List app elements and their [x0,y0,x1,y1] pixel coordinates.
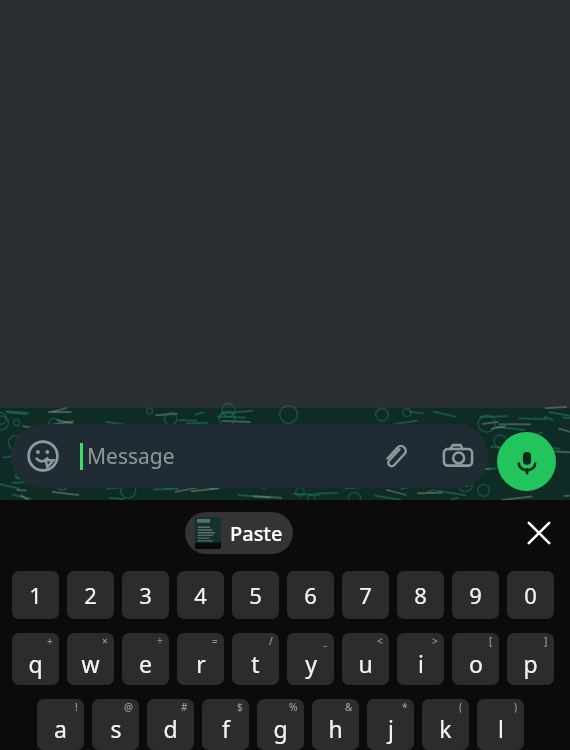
staticText: u [358,648,373,679]
staticText: ] [544,634,548,648]
button[interactable]: Camera [442,440,474,472]
staticText: < [377,634,383,648]
button[interactable]: $ [202,699,249,750]
staticText: _ [323,634,328,648]
staticText: Message [87,442,175,471]
button[interactable]: 1 [12,571,59,619]
staticText: o [469,648,483,679]
staticText: h [328,713,343,744]
button[interactable]: Stickers [25,438,61,474]
staticText: 7 [359,580,372,610]
button[interactable]: 2 [67,571,114,619]
staticText: t [251,648,260,679]
staticText: ( [459,700,463,714]
button[interactable]: ] [507,633,554,685]
staticText: 5 [249,580,262,610]
button[interactable]: [ [452,633,499,685]
staticText: × [102,634,108,648]
staticText: f [222,713,230,744]
staticText: > [432,634,438,648]
staticText: [ [489,634,493,648]
staticText: e [139,648,152,679]
button[interactable]: & [312,699,359,750]
button[interactable]: * [367,699,414,750]
button[interactable]: < [342,633,389,685]
button[interactable]: 7 [342,571,389,619]
button[interactable]: @ [92,699,139,750]
button[interactable]: _ [287,633,334,685]
staticText: ÷ [157,634,163,648]
staticText: 3 [139,580,152,610]
staticText: % [289,700,298,714]
button[interactable]: 4 [177,571,224,619]
button[interactable]: + [12,633,59,685]
button[interactable]: 0 [507,571,554,619]
staticText: / [269,634,273,648]
staticText: 4 [194,580,207,610]
staticText: 0 [524,580,537,610]
staticText: j [388,713,394,744]
button[interactable]: Attach [380,442,408,470]
button[interactable]: % [257,699,304,750]
staticText: Paste [230,520,283,547]
staticText: k [439,713,452,744]
staticText: ) [514,700,518,714]
button[interactable]: 8 [397,571,444,619]
staticText: 6 [304,580,317,610]
button[interactable]: 6 [287,571,334,619]
button[interactable]: 9 [452,571,499,619]
staticText: i [418,648,424,679]
staticText: 8 [414,580,427,610]
button[interactable]: Voice message [497,432,556,491]
staticText: s [110,713,122,744]
staticText: l [498,713,504,744]
button[interactable]: Stickers [11,424,488,488]
button[interactable]: # [147,699,194,750]
staticText: @ [124,700,133,714]
staticText: p [523,648,538,679]
staticText: g [273,713,288,744]
staticText: y [305,648,317,679]
staticText: $ [237,700,243,714]
button[interactable]: Paste [185,512,293,554]
staticText: * [402,700,408,714]
button[interactable]: ) [477,699,524,750]
staticText: 2 [84,580,97,610]
button[interactable]: ÷ [122,633,169,685]
button[interactable]: 5 [232,571,279,619]
staticText: a [54,713,67,744]
button[interactable]: / [232,633,279,685]
staticText: & [345,700,353,714]
staticText: 1 [29,580,42,610]
button[interactable]: ! [37,699,84,750]
button[interactable]: × [67,633,114,685]
staticText: d [163,713,178,744]
staticText: ! [75,700,78,714]
staticText: q [28,648,43,679]
staticText: + [47,634,53,648]
staticText: 9 [469,580,482,610]
button[interactable]: Close [522,516,556,550]
staticText: r [196,648,206,679]
button[interactable]: 3 [122,571,169,619]
staticText: = [212,634,218,648]
button[interactable]: ( [422,699,469,750]
staticText: w [81,648,100,679]
button[interactable]: = [177,633,224,685]
button[interactable]: > [397,633,444,685]
staticText: # [181,700,188,714]
